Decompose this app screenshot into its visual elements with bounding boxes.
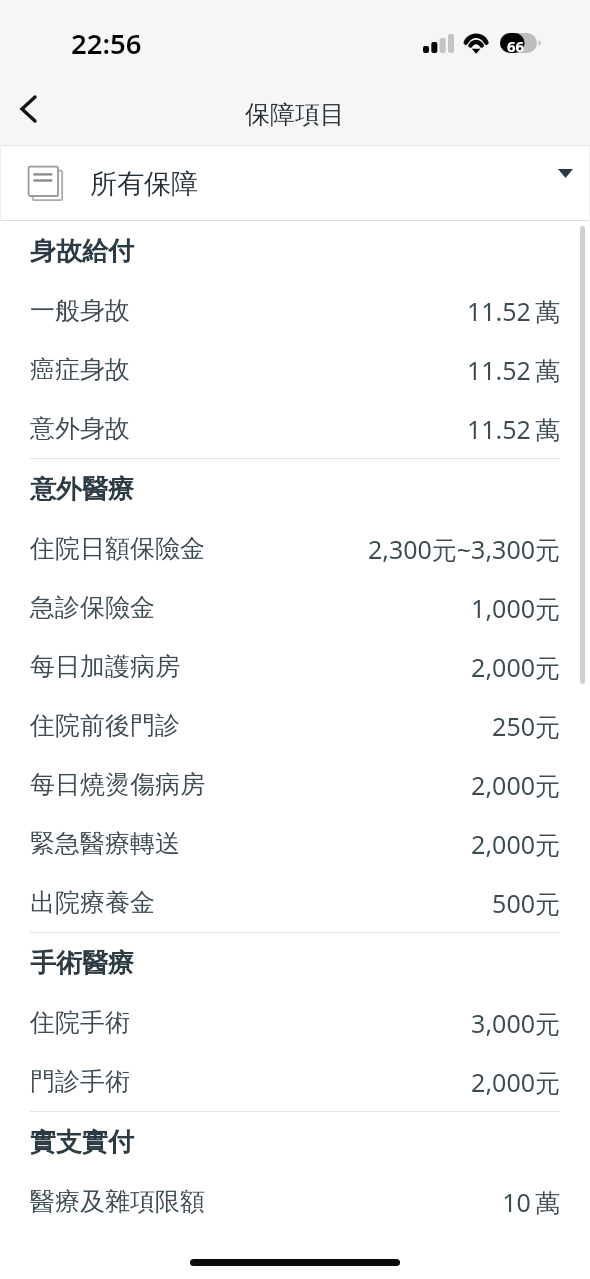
button[interactable]: 急診保險金 [0, 578, 590, 637]
staticText: 住院手術 [30, 1007, 130, 1038]
staticText: 10 萬 [502, 1185, 560, 1219]
button[interactable]: 每日加護病房 [0, 637, 590, 696]
staticText: 2,000元 [471, 650, 560, 684]
button[interactable]: 出院療養金 [0, 873, 590, 932]
staticText: 500元 [492, 886, 560, 920]
button[interactable]: 住院手術 [0, 993, 590, 1052]
button[interactable]: 意外身故 [0, 399, 590, 458]
staticText: 2,000元 [471, 1065, 560, 1099]
staticText: 66 [507, 36, 525, 56]
staticText: 11.52 萬 [466, 412, 560, 446]
staticText: 11.52 萬 [466, 353, 560, 387]
staticText: 2,000元 [471, 827, 560, 861]
staticText: 每日加護病房 [30, 651, 180, 682]
staticText: 身故給付 [30, 235, 134, 268]
staticText: 一般身故 [30, 295, 130, 326]
staticText: 每日燒燙傷病房 [30, 769, 205, 800]
staticText: 手術醫療 [30, 947, 134, 980]
staticText: 2,000元 [471, 768, 560, 802]
staticText: 2,300元~3,300元 [367, 532, 560, 566]
staticText: 緊急醫療轉送 [30, 828, 180, 859]
button[interactable]: 門診手術 [0, 1052, 590, 1111]
button[interactable]: 住院日額保險金 [0, 519, 590, 578]
staticText: 22:56 [71, 25, 142, 62]
button[interactable]: 緊急醫療轉送 [0, 814, 590, 873]
staticText: 出院療養金 [30, 887, 155, 918]
staticText: 意外身故 [30, 413, 130, 444]
staticText: 醫療及雜項限額 [30, 1186, 205, 1217]
staticText: 250元 [492, 709, 560, 743]
button[interactable]: 所有保障 [0, 145, 590, 220]
button[interactable]: 每日燒燙傷病房 [0, 755, 590, 814]
button[interactable]: 醫療及雜項限額 [0, 1172, 590, 1231]
staticText: 11.52 萬 [466, 294, 560, 328]
button[interactable]: 一般身故 [0, 281, 590, 340]
staticText: 保障項目 [245, 99, 345, 130]
staticText: 所有保障 [90, 167, 198, 201]
button[interactable]: 癌症身故 [0, 340, 590, 399]
staticText: 住院日額保險金 [30, 533, 205, 564]
button[interactable]: 住院前後門診 [0, 696, 590, 755]
staticText: 意外醫療 [30, 473, 134, 506]
staticText: 癌症身故 [30, 354, 130, 385]
staticText: 住院前後門診 [30, 710, 180, 741]
staticText: 1,000元 [471, 591, 560, 625]
staticText: 急診保險金 [30, 592, 155, 623]
staticText: 3,000元 [471, 1006, 560, 1040]
button[interactable]: Back [4, 87, 52, 131]
staticText: 實支實付 [30, 1126, 134, 1159]
staticText: 門診手術 [30, 1066, 130, 1097]
